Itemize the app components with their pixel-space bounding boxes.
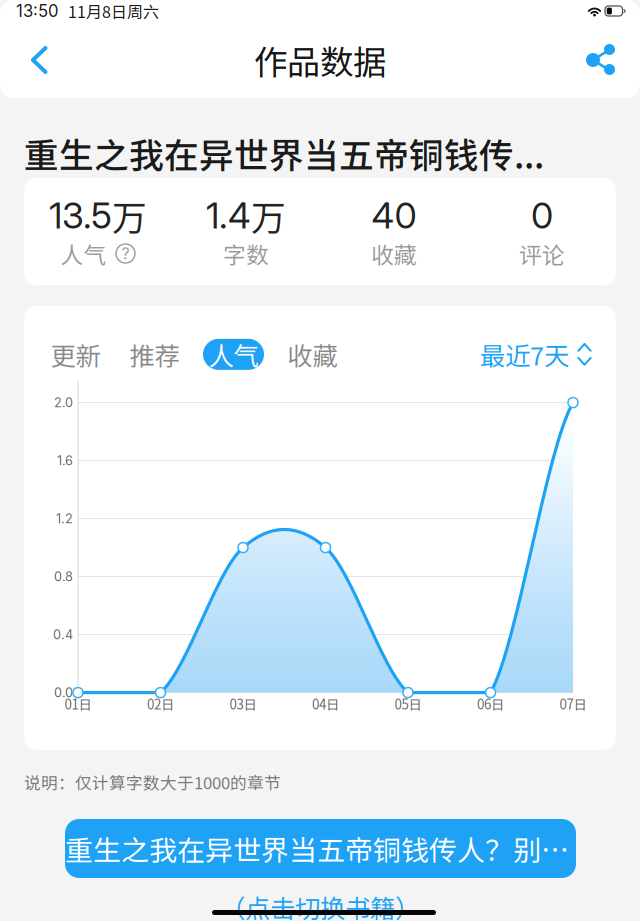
staticText: ? <box>121 244 129 263</box>
button[interactable]: 更新 <box>36 339 115 370</box>
staticText: 说明：仅计算字数大于1000的章节 <box>24 770 281 794</box>
staticText: 评论 <box>519 237 565 270</box>
button[interactable]: 人气 <box>194 339 273 370</box>
staticText: 1.4 <box>206 194 251 237</box>
staticText: 06日 <box>477 694 504 713</box>
button[interactable]: 收藏 <box>273 339 352 370</box>
staticText: 13:50 <box>16 1 59 21</box>
staticText: 万 <box>251 190 286 241</box>
staticText: 1.6 <box>57 453 73 468</box>
button[interactable]: 重生之我在异世界当五帝铜钱传人？别太… <box>65 819 576 878</box>
button[interactable]: 最近7天 <box>480 336 592 373</box>
staticText: 05日 <box>394 694 421 713</box>
staticText: 40 <box>371 194 416 237</box>
staticText: 作品数据 <box>254 36 386 84</box>
staticText: 1.2 <box>56 511 73 526</box>
staticText: 推荐 <box>129 336 179 373</box>
staticText: （点击切换书籍） <box>220 889 420 921</box>
button[interactable]: Back <box>8 27 70 93</box>
staticText: 2.0 <box>54 395 73 410</box>
staticText: 人气 <box>208 336 258 373</box>
staticText: 0.8 <box>54 569 73 584</box>
staticText: 11月8日周六 <box>68 0 159 23</box>
staticText: 03日 <box>229 694 256 713</box>
staticText: 02日 <box>147 694 174 713</box>
button[interactable]: （点击切换书籍） <box>180 893 460 921</box>
staticText: 01日 <box>64 694 91 713</box>
button[interactable]: 推荐 <box>115 339 194 370</box>
staticText: 07日 <box>559 694 586 713</box>
staticText: 字数 <box>223 237 269 270</box>
staticText: 重生之我在异世界当五帝铜钱传人？别太… <box>65 828 576 869</box>
staticText: 收藏 <box>287 336 337 373</box>
staticText: 重生之我在异世界当五帝铜钱传... <box>24 128 544 178</box>
staticText: 0 <box>531 194 553 237</box>
staticText: 0.4 <box>53 627 73 642</box>
staticText: 0.0 <box>54 685 73 700</box>
staticText: 万 <box>112 190 147 241</box>
button[interactable]: Share <box>570 27 632 93</box>
staticText: 人气 <box>60 237 106 270</box>
staticText: 13.5 <box>49 194 112 237</box>
staticText: 04日 <box>312 694 339 713</box>
staticText: 更新 <box>50 336 100 373</box>
staticText: 最近7天 <box>480 336 569 373</box>
staticText: 收藏 <box>371 237 417 270</box>
